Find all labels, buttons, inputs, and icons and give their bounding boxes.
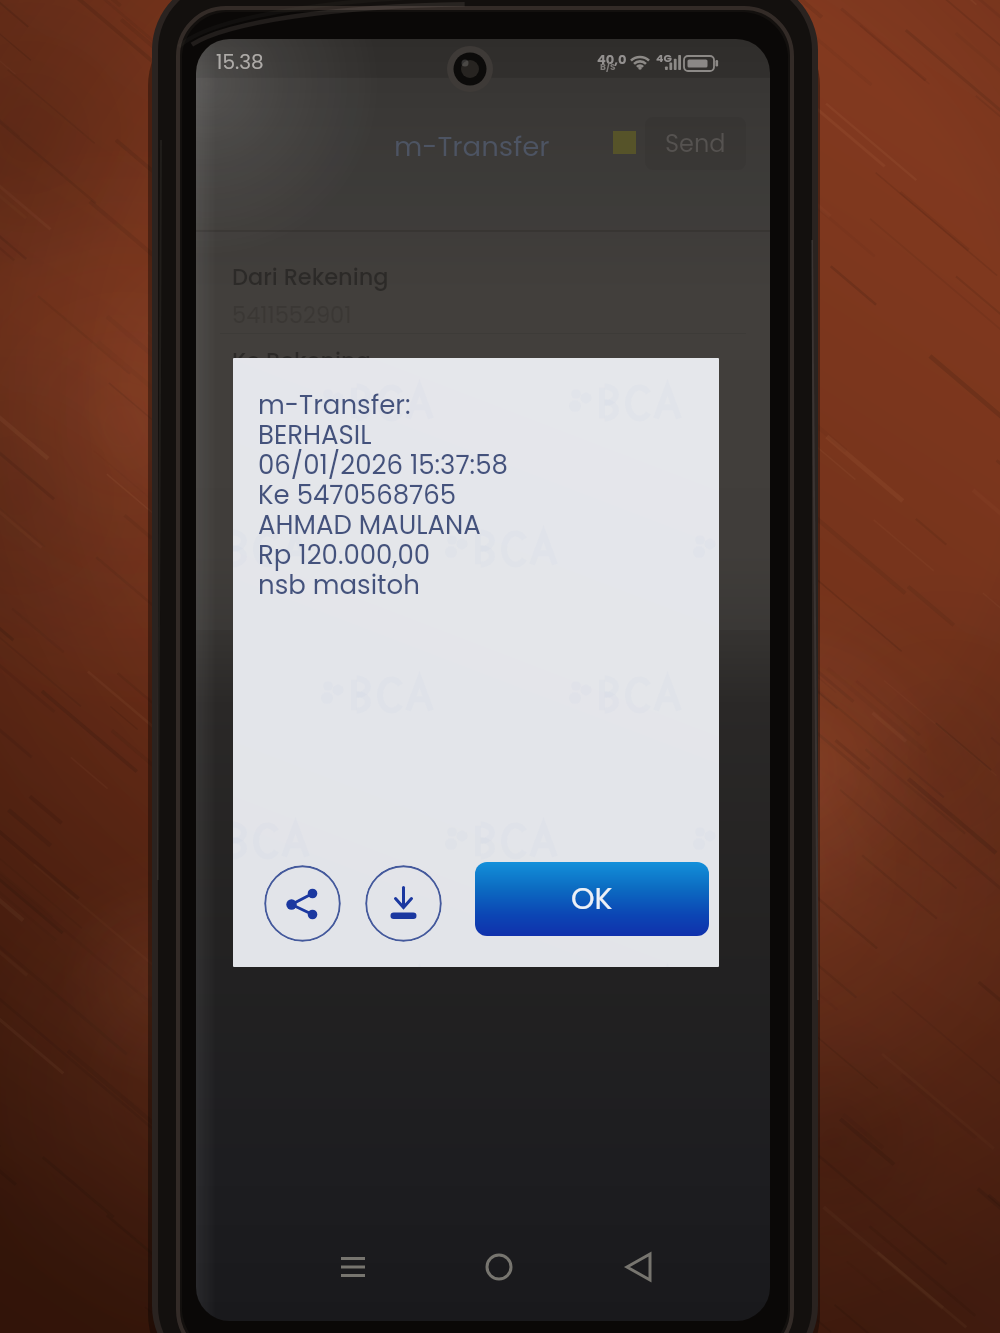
button[interactable]: Home xyxy=(473,1241,525,1293)
staticText: m-Transfer xyxy=(394,127,550,165)
button[interactable]: Download xyxy=(365,865,442,942)
button[interactable]: OK xyxy=(475,862,709,936)
button[interactable]: Send xyxy=(645,117,746,170)
staticText: Ke Rekening xyxy=(232,345,371,376)
staticText: OK xyxy=(571,878,613,920)
button[interactable]: Share xyxy=(264,865,341,942)
staticText: Dari Rekening xyxy=(232,261,389,292)
staticText: 40,0 xyxy=(597,50,627,68)
button[interactable]: Back xyxy=(614,1241,666,1293)
staticText: B/S xyxy=(600,61,616,74)
staticText: m-Transfer: BERHASIL 06/01/2026 15:37:58… xyxy=(258,387,508,603)
staticText: Send xyxy=(665,127,726,161)
button[interactable]: Recent apps xyxy=(327,1241,379,1293)
staticText: 4G xyxy=(656,50,672,65)
staticText: 15.38 xyxy=(216,48,264,76)
